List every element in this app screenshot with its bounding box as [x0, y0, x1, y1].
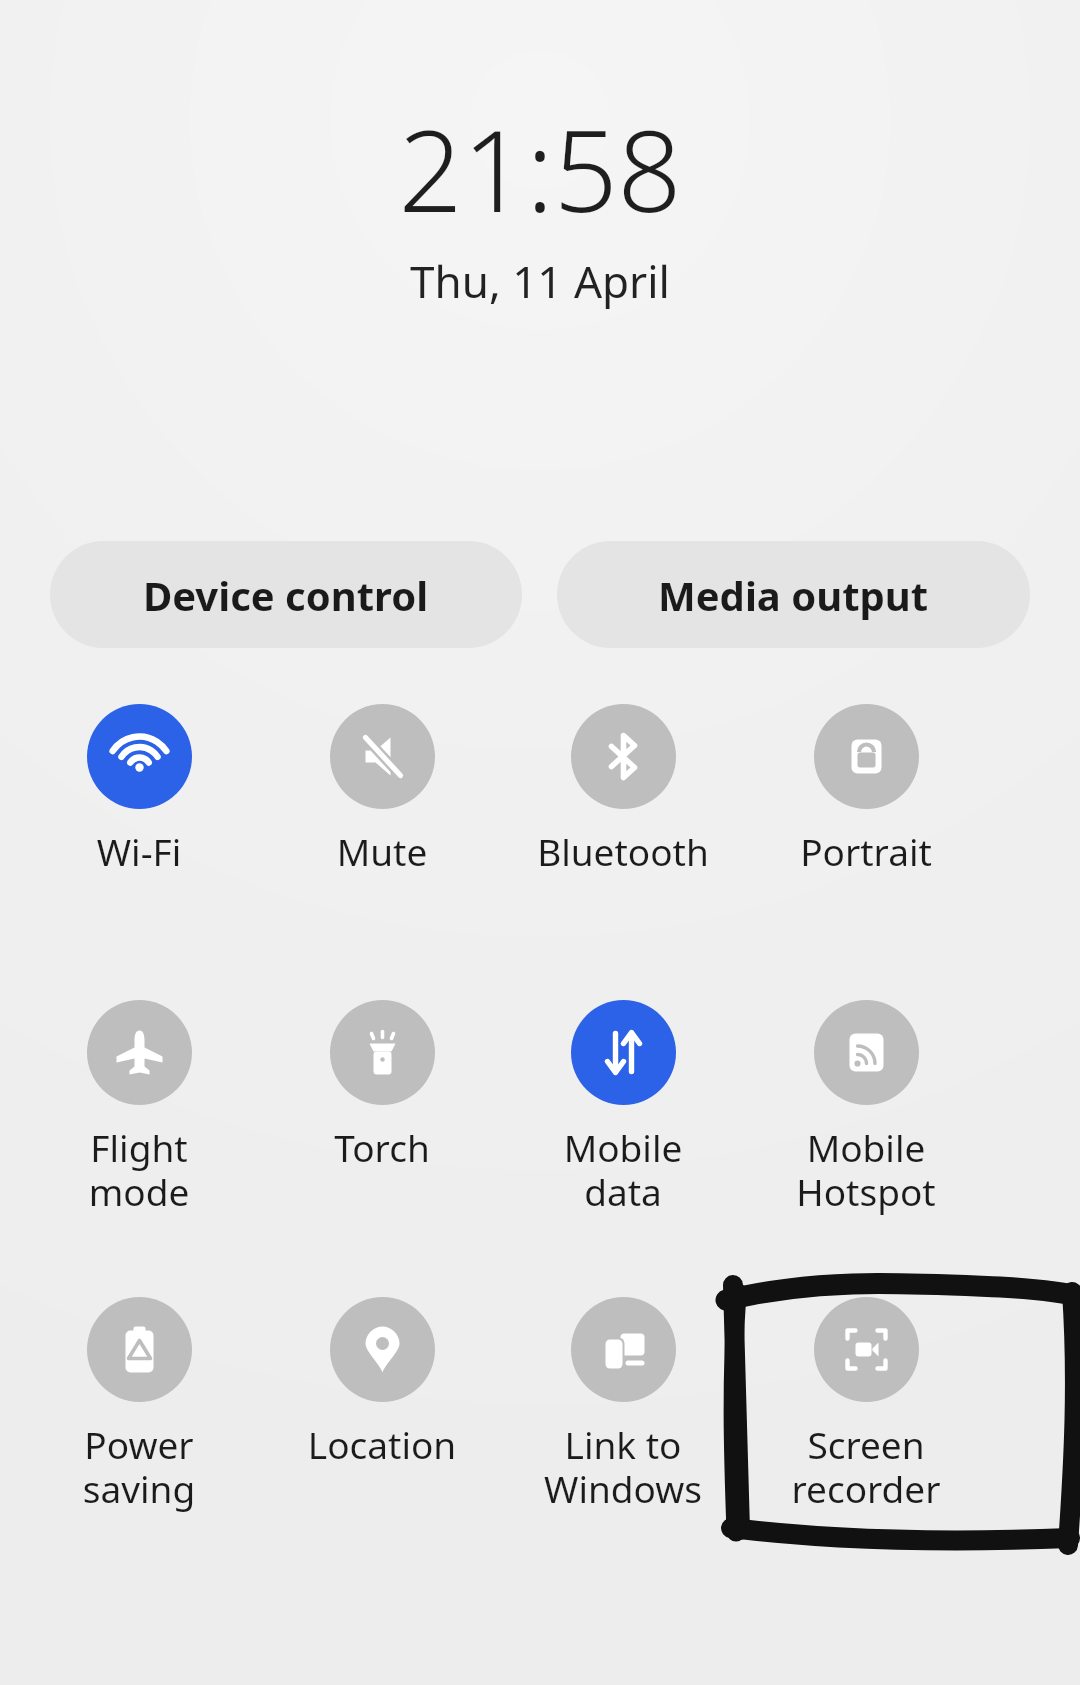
button[interactable]: Mute	[262, 704, 502, 934]
staticText: Mobile Hotspot	[746, 1122, 986, 1217]
button[interactable]: Screen recorder	[746, 1297, 986, 1527]
button[interactable]: Link to Windows	[503, 1297, 743, 1527]
staticText: Mute	[262, 826, 502, 876]
button[interactable]: Media output	[557, 541, 1030, 648]
staticText: Bluetooth	[503, 826, 743, 876]
staticText: Portrait	[746, 826, 986, 876]
button[interactable]: Portrait	[746, 704, 986, 934]
staticText: Mobile data	[503, 1122, 743, 1217]
button[interactable]: Mobile Hotspot	[746, 1000, 986, 1230]
staticText: 21:58	[398, 92, 682, 245]
staticText: Screen recorder	[746, 1419, 986, 1514]
staticText: Media output	[658, 568, 929, 622]
staticText: Flight mode	[19, 1122, 259, 1217]
staticText: Thu, 11 April	[410, 251, 670, 311]
staticText: Location	[262, 1419, 502, 1469]
staticText: Power saving	[19, 1419, 259, 1514]
staticText: Link to Windows	[503, 1419, 743, 1514]
staticText: Torch	[262, 1122, 502, 1172]
button[interactable]: Mobile data	[503, 1000, 743, 1230]
button[interactable]: Device control	[50, 541, 522, 648]
button[interactable]: Flight mode	[19, 1000, 259, 1230]
button[interactable]: Wi-Fi	[19, 704, 259, 934]
button[interactable]: Location	[262, 1297, 502, 1527]
button[interactable]: Power saving	[19, 1297, 259, 1527]
staticText: Wi-Fi	[19, 826, 259, 876]
staticText: Device control	[143, 568, 429, 622]
button[interactable]: Torch	[262, 1000, 502, 1230]
button[interactable]: Bluetooth	[503, 704, 743, 934]
